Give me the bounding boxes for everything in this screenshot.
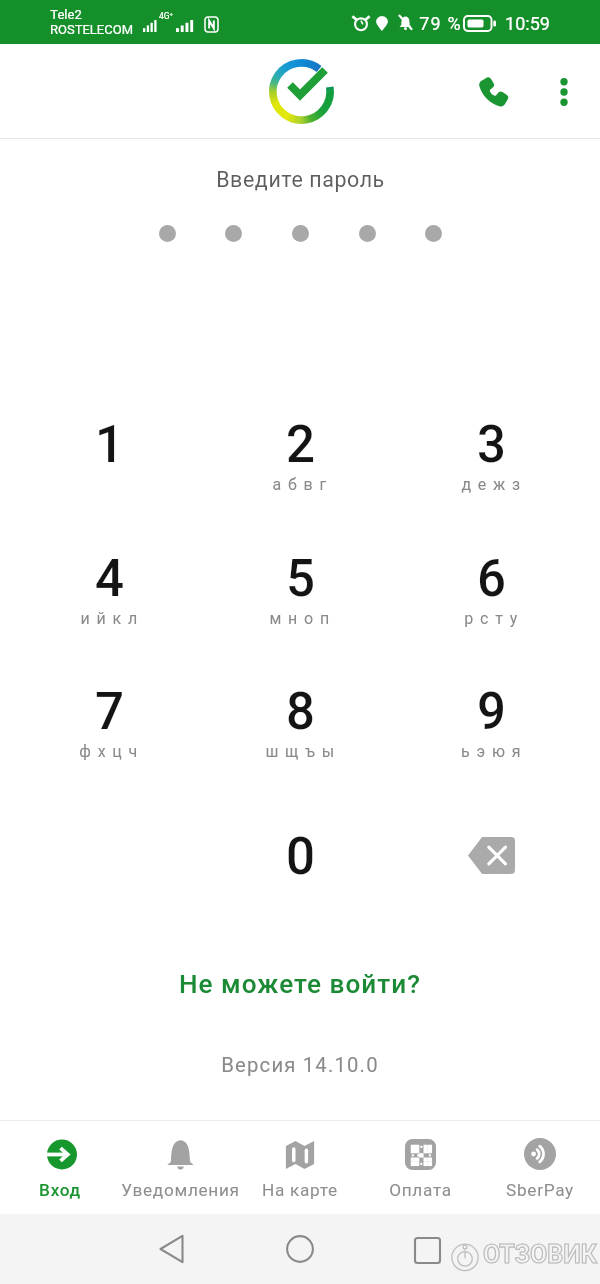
button[interactable]: 2 xyxy=(235,415,365,497)
button[interactable]: SberPay xyxy=(480,1121,600,1214)
button[interactable]: More options xyxy=(540,68,588,116)
staticText: 10:59 xyxy=(505,13,550,34)
button[interactable]: 7 xyxy=(44,682,174,764)
button[interactable]: Delete xyxy=(431,818,551,892)
staticText: а б в г xyxy=(272,475,328,494)
button[interactable]: 5 xyxy=(235,549,365,631)
staticText: ОТЗОВИК xyxy=(483,1240,597,1269)
button[interactable]: 9 xyxy=(426,682,556,764)
button[interactable]: На карте xyxy=(240,1121,360,1214)
staticText: р с т у xyxy=(464,609,519,628)
staticText: 6 xyxy=(477,549,506,609)
staticText: 4G⁺ xyxy=(159,11,173,21)
staticText: д е ж з xyxy=(461,475,522,494)
staticText: Уведомления xyxy=(121,1180,240,1200)
staticText: Введите пароль xyxy=(216,167,385,192)
button[interactable]: 4 xyxy=(44,549,174,631)
staticText: 7 xyxy=(95,682,124,742)
button[interactable]: Back xyxy=(146,1224,196,1274)
staticText: 5 xyxy=(286,549,315,609)
staticText: м н о п xyxy=(269,609,331,628)
button[interactable]: Не можете войти? xyxy=(155,960,445,1008)
staticText: ь э ю я xyxy=(461,742,522,761)
staticText: Оплата xyxy=(389,1180,452,1200)
button[interactable]: Home xyxy=(275,1224,325,1274)
staticText: 0 xyxy=(286,827,315,887)
staticText: и й к л xyxy=(80,609,139,628)
staticText: Не можете войти? xyxy=(179,969,421,1000)
button[interactable]: 3 xyxy=(426,415,556,497)
button[interactable]: Recent apps xyxy=(402,1225,452,1275)
staticText: ш щ ъ ы xyxy=(265,742,336,761)
staticText: 4 xyxy=(95,549,124,609)
staticText: ф х ц ч xyxy=(79,742,139,761)
staticText: ROSTELECOM xyxy=(50,22,133,37)
staticText: На карте xyxy=(262,1180,338,1200)
staticText: SberPay xyxy=(506,1180,574,1200)
button[interactable]: Оплата xyxy=(360,1121,480,1214)
button[interactable]: 6 xyxy=(426,549,556,631)
button[interactable]: Уведомления xyxy=(120,1121,240,1214)
staticText: 8 xyxy=(286,682,315,742)
staticText: 79 % xyxy=(419,13,462,34)
staticText: 3 xyxy=(477,415,506,475)
staticText: 1 xyxy=(95,415,124,475)
button[interactable]: 1 xyxy=(44,415,174,497)
staticText: 9 xyxy=(477,682,506,742)
button[interactable]: 8 xyxy=(235,682,365,764)
staticText: 2 xyxy=(286,415,315,475)
staticText: Версия 14.10.0 xyxy=(221,1053,379,1077)
staticText: Tele2 xyxy=(50,7,82,22)
staticText: Вход xyxy=(39,1180,81,1200)
button[interactable]: 0 xyxy=(235,827,365,909)
button[interactable]: Вход xyxy=(0,1121,120,1214)
button[interactable]: Call support xyxy=(465,64,521,120)
